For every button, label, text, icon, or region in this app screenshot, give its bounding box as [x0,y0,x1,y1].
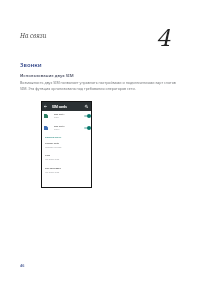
staticText: Slot 2 [54,128,60,131]
button[interactable] [84,114,91,118]
button[interactable]: Cellular data [42,142,91,151]
staticText: Preferred SIM for [45,136,62,139]
button[interactable]: SIM slot 1 [42,110,91,122]
staticText: Slot 1 [54,116,60,119]
staticText: Ask every time [45,158,60,161]
staticText: Звонки [20,61,42,69]
staticText: Возможность двух SIM позволяет управлять… [20,80,182,91]
staticText: 46 [20,263,25,268]
staticText: На связи [20,31,47,39]
staticText: Cellular data [45,142,59,145]
staticText: SIM cards [52,105,67,109]
button[interactable]: Search [83,103,90,110]
button[interactable]: Calls [42,154,91,163]
staticText: Использование двух SIM [20,73,74,79]
staticText: SIM slot 1 [54,113,65,116]
staticText: 4 [158,20,172,53]
staticText: Ask every time [45,171,60,174]
staticText: Internet Unused [45,146,62,149]
button[interactable]: SIM slot 2 [42,122,91,134]
staticText: Calls [45,154,51,157]
button[interactable] [84,126,91,130]
button[interactable]: SMS messages [42,167,91,176]
staticText: SMS messages [45,167,61,170]
staticText: SIM slot 2 [54,125,65,128]
button[interactable]: Back [43,104,48,109]
